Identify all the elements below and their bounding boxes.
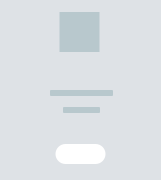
- button[interactable]: Continue: [55, 144, 105, 164]
